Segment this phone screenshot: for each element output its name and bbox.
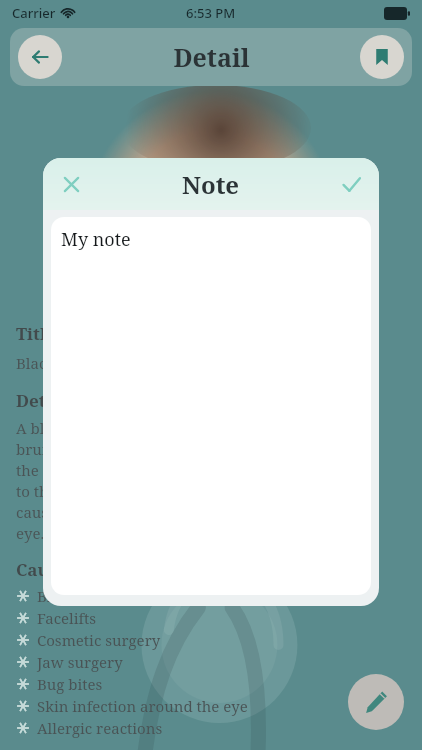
staticText: Jaw surgery bbox=[37, 652, 123, 672]
button[interactable]: Bookmark bbox=[360, 35, 404, 79]
button[interactable]: Edit note bbox=[348, 674, 404, 730]
staticText: Cosmetic surgery bbox=[37, 630, 161, 650]
staticText: Carrier bbox=[12, 4, 56, 22]
button[interactable]: My note bbox=[51, 217, 371, 595]
staticText: Causes bbox=[16, 558, 75, 581]
button[interactable]: Close note bbox=[51, 164, 91, 204]
staticText: Allergic reactions bbox=[37, 718, 163, 738]
button[interactable]: Back bbox=[18, 35, 62, 79]
button[interactable]: Save note bbox=[331, 164, 371, 204]
staticText: My note bbox=[61, 227, 131, 252]
staticText: Black eye bbox=[16, 353, 84, 373]
staticText: Facelifts bbox=[37, 608, 97, 628]
staticText: Bug bites bbox=[37, 674, 103, 694]
staticText: Black eye bbox=[37, 586, 105, 606]
staticText: A black eye is bruising and swelling bru… bbox=[16, 418, 296, 544]
staticText: 6:53 PM bbox=[186, 4, 236, 22]
staticText: Title bbox=[16, 322, 56, 345]
staticText: Detail bbox=[173, 40, 250, 74]
staticText: Detail bbox=[16, 389, 68, 412]
staticText: Skin infection around the eye bbox=[37, 696, 248, 716]
staticText: Note bbox=[182, 168, 240, 201]
